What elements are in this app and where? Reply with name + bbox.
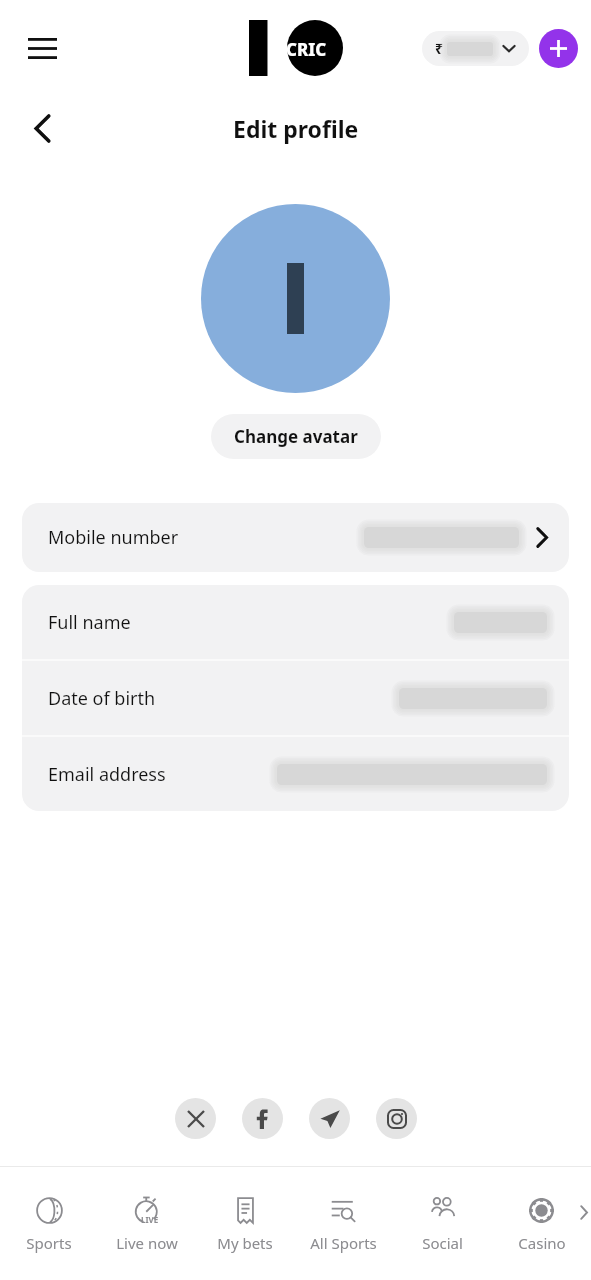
staticText: ₹ [435,39,444,58]
button[interactable]: My bets [196,1167,294,1280]
button[interactable]: Email address [22,737,569,811]
button[interactable]: Telegram [309,1098,350,1139]
button[interactable]: Facebook [242,1098,283,1139]
button[interactable]: Sports [0,1167,98,1280]
button[interactable]: Casino [492,1167,591,1280]
button[interactable]: X [175,1098,216,1139]
staticText: LIVE [141,1214,159,1225]
staticText: Email address [48,762,166,787]
button[interactable]: Instagram [376,1098,417,1139]
button[interactable]: Full name [22,585,569,659]
staticText: Full name [48,610,131,635]
staticText: Sports [26,1233,72,1253]
staticText: CRIC [286,38,327,61]
staticText: Edit profile [233,113,359,144]
button[interactable]: All Sports [294,1167,393,1280]
button[interactable]: Menu [13,19,71,77]
staticText: Social [422,1233,463,1253]
staticText: All Sports [310,1233,377,1253]
button[interactable]: Back [16,102,68,154]
button[interactable]: Date of birth [22,661,569,735]
button[interactable]: Change avatar [211,414,381,459]
button[interactable]: Social [393,1167,492,1280]
staticText: Change avatar [234,425,358,448]
button[interactable]: Profile avatar [201,204,390,393]
staticText: My bets [217,1233,273,1253]
button[interactable]: ₹ [422,31,529,66]
staticText: Casino [518,1233,566,1253]
staticText: Live now [116,1233,178,1253]
button[interactable]: Mobile number [22,503,569,572]
button[interactable]: LIVE [98,1167,196,1280]
staticText: Mobile number [48,525,179,550]
staticText: Date of birth [48,686,156,711]
button[interactable]: Deposit [539,29,578,68]
